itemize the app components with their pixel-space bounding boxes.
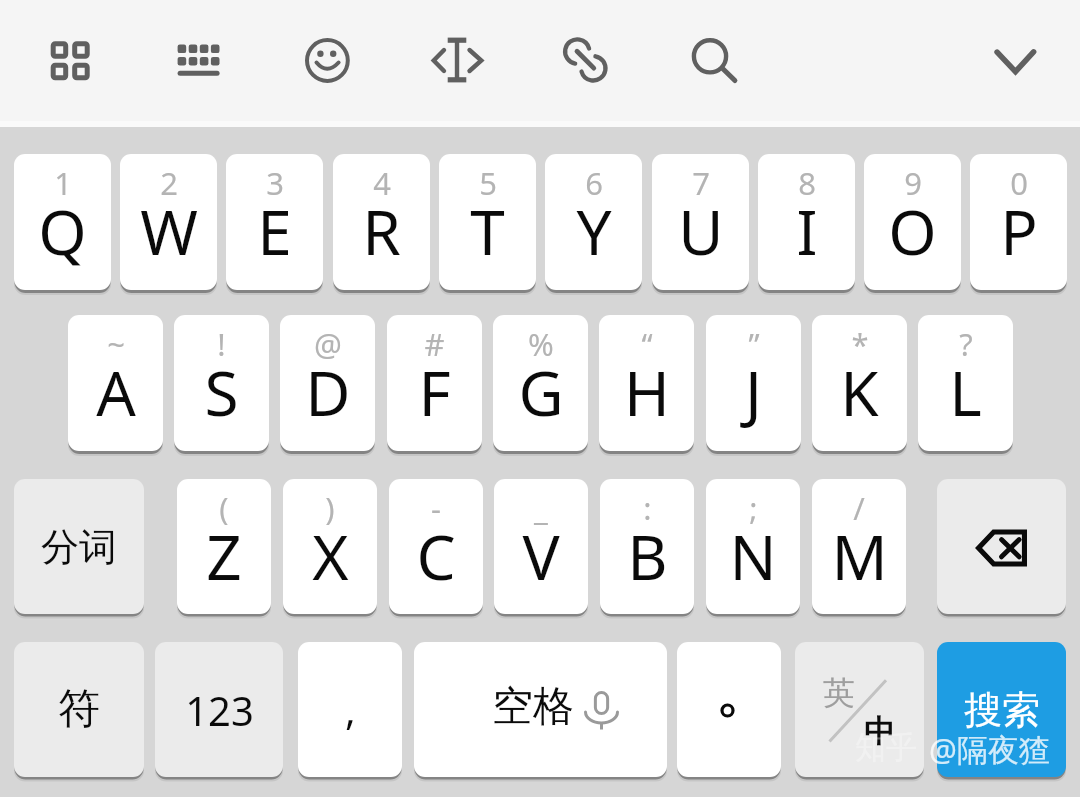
staticText: H (624, 350, 670, 434)
button[interactable]: Clipboard (555, 30, 615, 90)
staticText: / (853, 487, 865, 529)
button[interactable]: Hide keyboard (985, 31, 1045, 91)
button[interactable]: X (283, 479, 377, 614)
button[interactable]: 空格 (414, 642, 667, 777)
staticText: K (840, 350, 879, 434)
staticText: X (312, 514, 349, 598)
button[interactable]: Search (679, 25, 739, 85)
button[interactable]: 。 (677, 642, 781, 777)
button[interactable]: 搜索 (937, 642, 1066, 777)
staticText: 5 (479, 162, 497, 204)
button[interactable]: 分词 (14, 479, 144, 614)
staticText: 123 (185, 683, 254, 737)
staticText: ? (959, 323, 973, 365)
button[interactable]: G (493, 315, 588, 451)
staticText: @隔夜猹 (929, 728, 1050, 770)
button[interactable]: D (280, 315, 375, 451)
staticText: S (204, 350, 239, 434)
staticText: 英 (823, 673, 855, 713)
staticText: W (140, 189, 198, 273)
staticText: Q (38, 189, 87, 273)
button[interactable]: O (864, 154, 961, 290)
staticText: C (416, 514, 456, 598)
staticText: B (627, 514, 668, 598)
staticText: 9 (904, 162, 922, 204)
staticText: 6 (585, 162, 603, 204)
staticText: Y (576, 189, 612, 273)
button[interactable]: F (387, 315, 482, 451)
button[interactable]: T (439, 154, 536, 290)
button[interactable]: C (389, 479, 483, 614)
staticText: 7 (692, 162, 710, 204)
staticText: P (1000, 189, 1038, 273)
staticText: 知乎 (855, 728, 917, 767)
staticText: G (518, 350, 564, 434)
button[interactable]: 123 (155, 642, 283, 777)
button[interactable]: B (600, 479, 694, 614)
staticText: 1 (54, 162, 72, 204)
staticText: A (96, 350, 136, 434)
staticText: J (745, 350, 762, 434)
staticText: ~ (107, 323, 125, 365)
button[interactable]: L (918, 315, 1013, 451)
staticText: Z (206, 514, 242, 598)
staticText: - (431, 487, 441, 529)
button[interactable]: Move cursor (427, 30, 487, 90)
button[interactable]: R (333, 154, 430, 290)
button[interactable]: U (652, 154, 749, 290)
staticText: 空格 (492, 681, 574, 733)
staticText: R (362, 189, 401, 273)
button[interactable]: H (599, 315, 694, 451)
button[interactable]: J (706, 315, 801, 451)
button[interactable]: P (970, 154, 1067, 290)
staticText: N (729, 514, 777, 598)
button[interactable]: Keyboard layout (168, 30, 228, 90)
staticText: * (851, 323, 869, 365)
button[interactable]: V (494, 479, 588, 614)
staticText: 0 (1010, 162, 1028, 204)
staticText: ( (219, 487, 229, 529)
staticText: # (424, 323, 445, 365)
staticText: ; (749, 487, 758, 529)
staticText: T (470, 189, 505, 273)
button[interactable]: Y (545, 154, 642, 290)
button[interactable]: K (812, 315, 907, 451)
staticText: 4 (373, 162, 391, 204)
staticText: ” (748, 323, 760, 365)
staticText: ) (325, 487, 335, 529)
button[interactable]: N (706, 479, 800, 614)
staticText: _ (534, 487, 548, 529)
button[interactable]: Z (177, 479, 271, 614)
button[interactable]: S (174, 315, 269, 451)
staticText: , (345, 682, 356, 736)
button[interactable]: Q (14, 154, 111, 290)
staticText: D (305, 350, 351, 434)
staticText: 8 (798, 162, 816, 204)
staticText: 分词 (41, 523, 117, 571)
button[interactable]: Emoji (297, 31, 357, 91)
staticText: M (831, 514, 888, 598)
button[interactable]: A (68, 315, 163, 451)
staticText: 中 (864, 712, 895, 751)
staticText: : (643, 487, 652, 529)
button[interactable]: E (226, 154, 323, 290)
button[interactable]: Backspace (937, 479, 1066, 614)
staticText: V (522, 514, 560, 598)
staticText: I (796, 189, 818, 273)
button[interactable]: , (298, 642, 402, 777)
staticText: F (418, 350, 451, 434)
button[interactable]: M (812, 479, 906, 614)
staticText: % (528, 323, 554, 365)
button[interactable]: 符 (14, 642, 144, 777)
button[interactable]: Switch language (795, 642, 924, 777)
staticText: 符 (58, 683, 100, 736)
staticText: @ (314, 323, 342, 365)
staticText: ! (217, 323, 226, 365)
staticText: 2 (160, 162, 178, 204)
button[interactable]: Panels (39, 30, 99, 90)
staticText: E (257, 189, 292, 273)
staticText: 搜索 (964, 686, 1040, 734)
staticText: O (888, 189, 937, 273)
button[interactable]: W (120, 154, 217, 290)
button[interactable]: I (758, 154, 855, 290)
